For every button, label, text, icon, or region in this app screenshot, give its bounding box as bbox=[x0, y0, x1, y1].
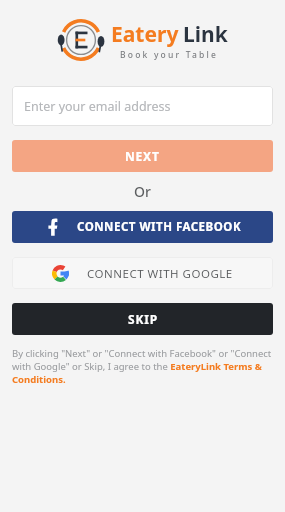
staticText: SKIP bbox=[128, 311, 158, 327]
staticText: Link bbox=[183, 20, 228, 49]
button[interactable]: Google bbox=[12, 257, 273, 289]
staticText: Eatery bbox=[111, 20, 179, 49]
other: Facebook bbox=[43, 218, 61, 236]
staticText: NEXT bbox=[125, 148, 160, 164]
staticText: By clicking "Next" or "Connect with Face… bbox=[12, 347, 273, 386]
staticText: Book your Table bbox=[120, 49, 219, 61]
staticText: CONNECT WITH GOOGLE bbox=[87, 266, 233, 282]
staticText: Or bbox=[134, 182, 151, 201]
other: Google bbox=[52, 265, 69, 282]
button[interactable]: NEXT bbox=[12, 140, 273, 172]
button[interactable]: SKIP bbox=[12, 303, 273, 335]
button[interactable]: Facebook bbox=[12, 211, 273, 243]
staticText: Enter your email address bbox=[24, 98, 171, 115]
staticText: CONNECT WITH FACEBOOK bbox=[77, 219, 242, 235]
other: EateryLink logo bbox=[57, 16, 105, 64]
button[interactable]: Enter your email address bbox=[12, 86, 273, 126]
